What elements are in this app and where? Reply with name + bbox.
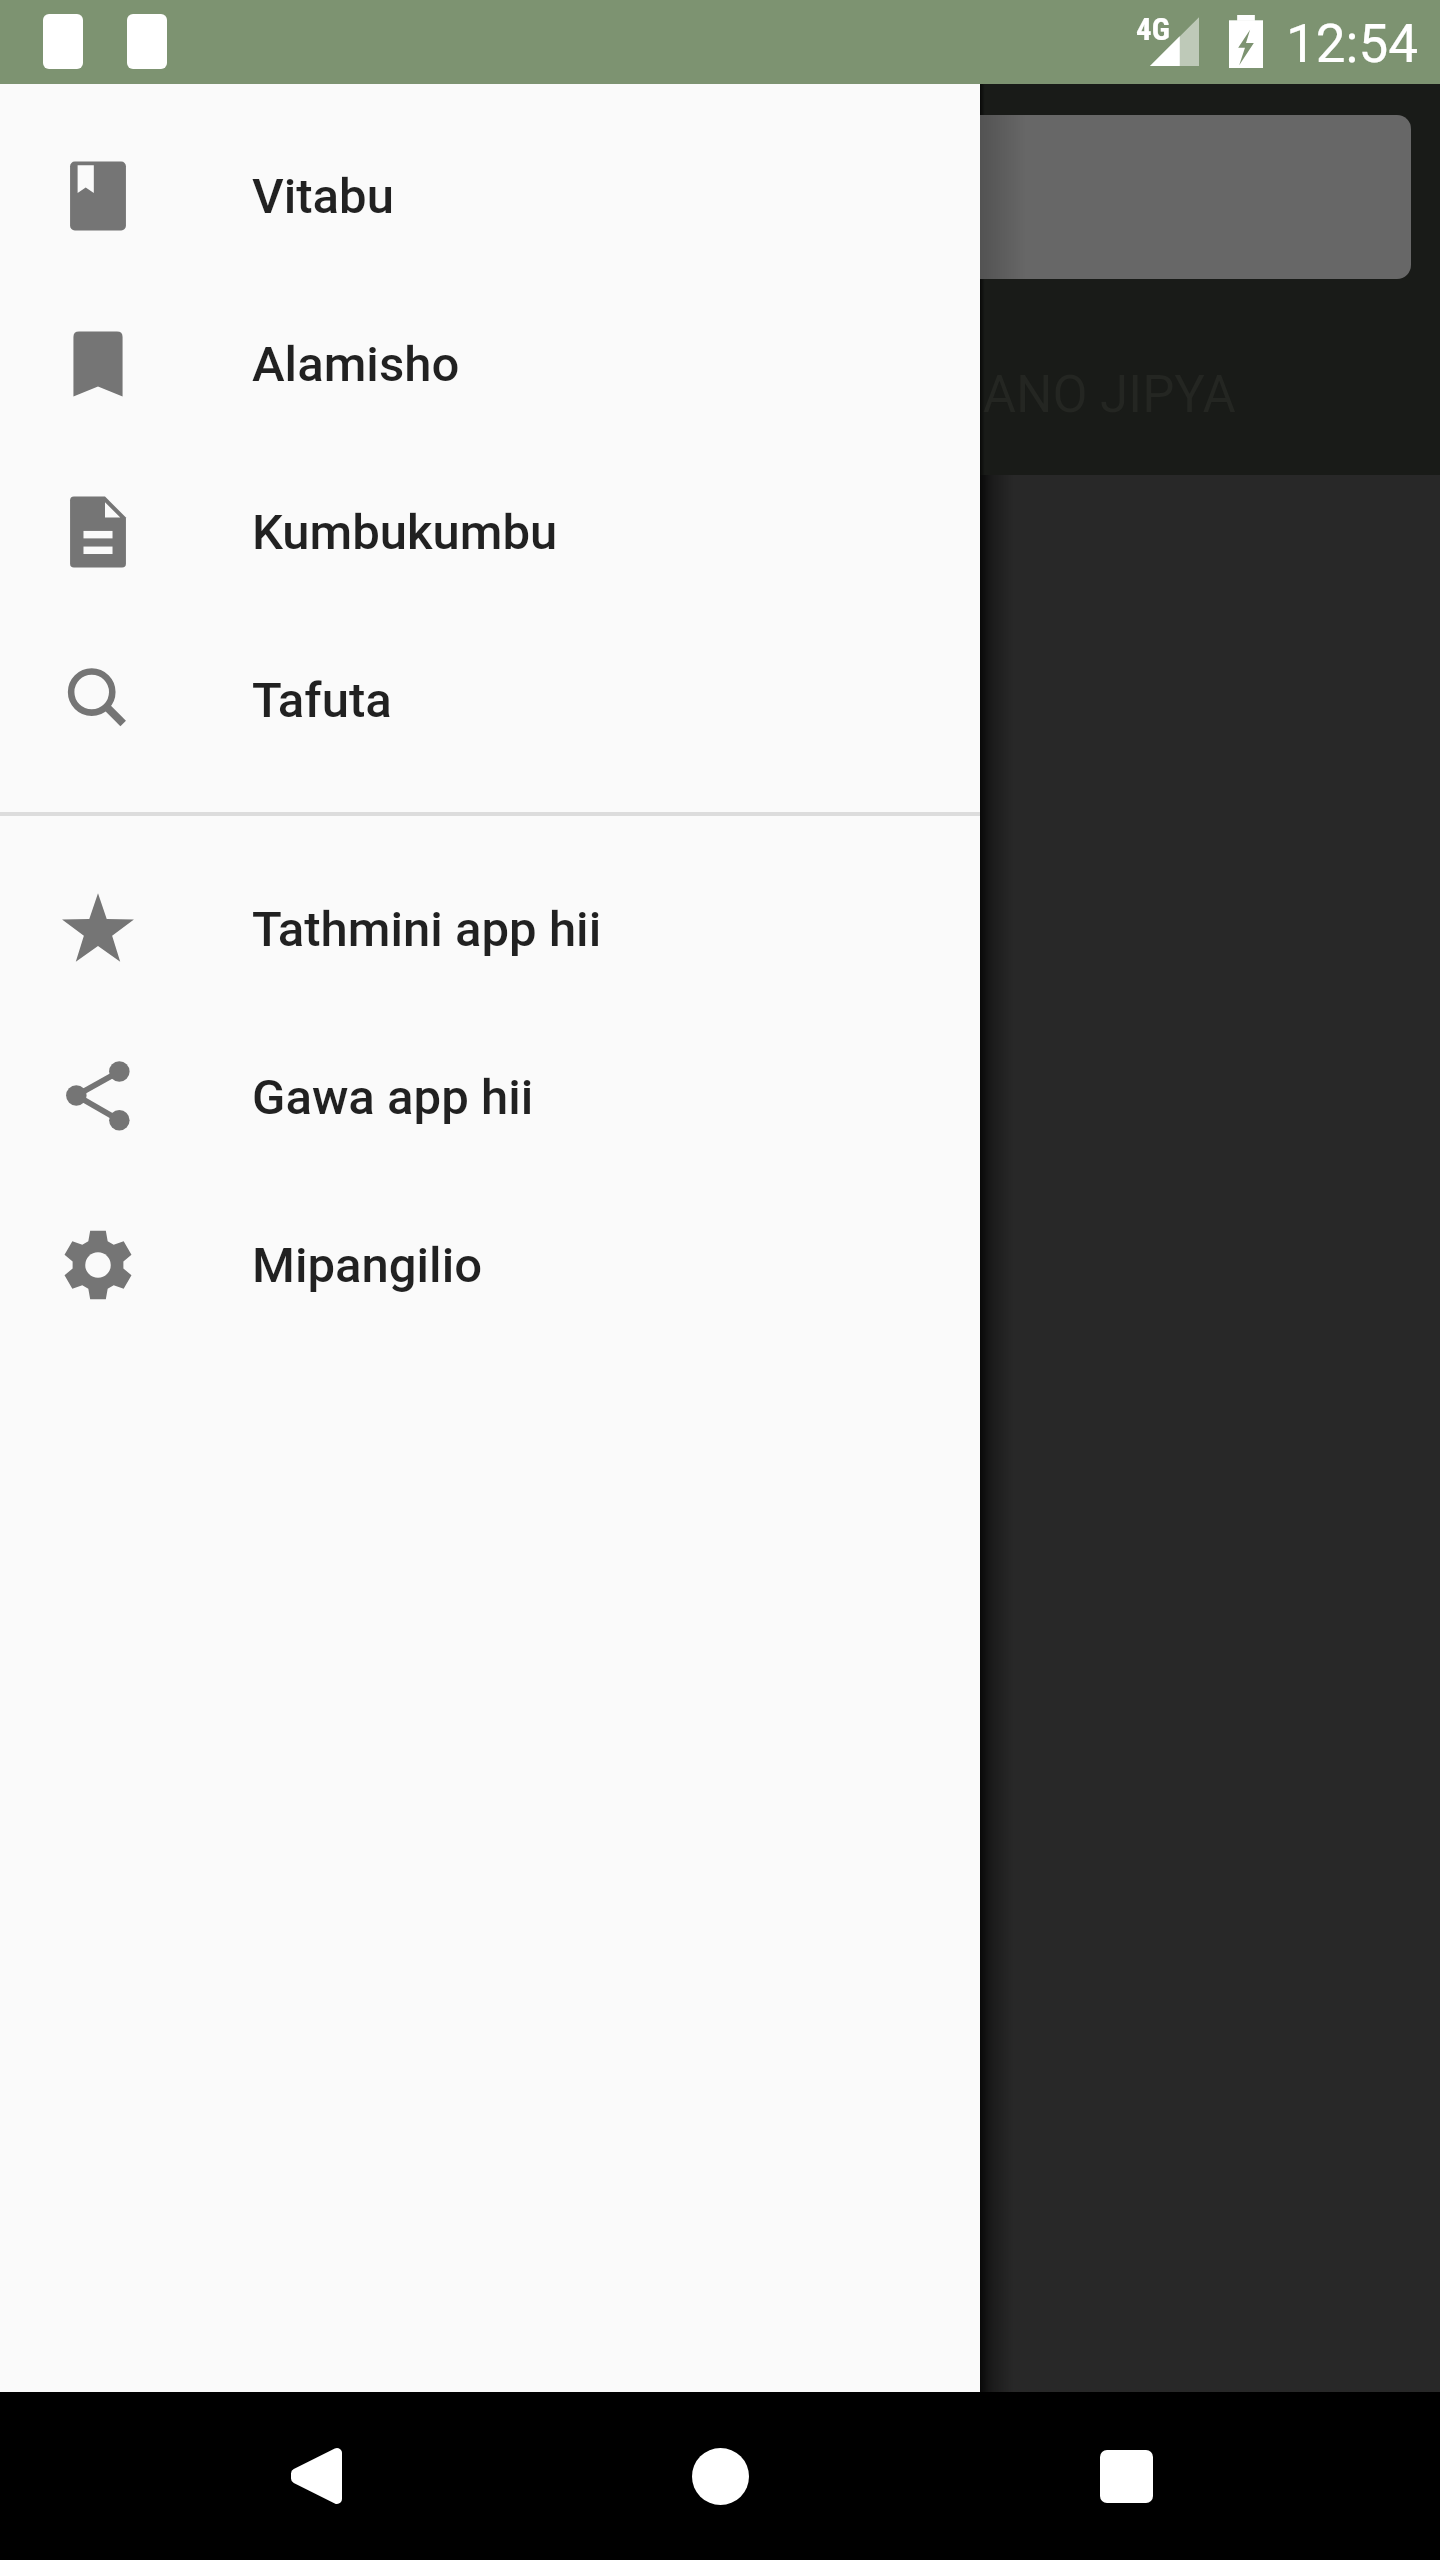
button[interactable]: Back xyxy=(256,2420,368,2532)
staticText: 12:54 xyxy=(1286,13,1418,75)
button[interactable]: AGANO JIPYA xyxy=(715,297,1435,493)
staticText: 4G xyxy=(1136,11,1170,47)
button[interactable]: Tafuta xyxy=(0,616,980,784)
button[interactable]: Tathmini app hii xyxy=(0,845,980,1013)
staticText: Gawa app hii xyxy=(252,1069,534,1126)
staticText: AGANO LA KALE xyxy=(165,365,546,425)
staticText: Kumbukumbu xyxy=(252,504,558,561)
button[interactable]: Home xyxy=(664,2420,776,2532)
button[interactable]: Kumbukumbu xyxy=(0,448,980,616)
button[interactable]: Alamisho xyxy=(0,280,980,448)
staticText: Alamisho xyxy=(252,336,460,393)
button[interactable]: Gawa app hii xyxy=(0,1013,980,1181)
staticText: AGANO JIPYA xyxy=(915,365,1236,425)
button[interactable]: Tafuta kitabu xyxy=(0,115,1411,279)
staticText: Mipangilio xyxy=(252,1237,483,1294)
button[interactable]: Vitabu xyxy=(0,112,980,280)
button[interactable]: AGANO LA KALE xyxy=(0,297,715,493)
button[interactable]: Recent apps xyxy=(1070,2420,1182,2532)
staticText: Vitabu xyxy=(252,168,394,225)
staticText: Tafuta xyxy=(252,672,392,729)
staticText: Tathmini app hii xyxy=(252,901,602,958)
button[interactable]: Mipangilio xyxy=(0,1181,980,1349)
